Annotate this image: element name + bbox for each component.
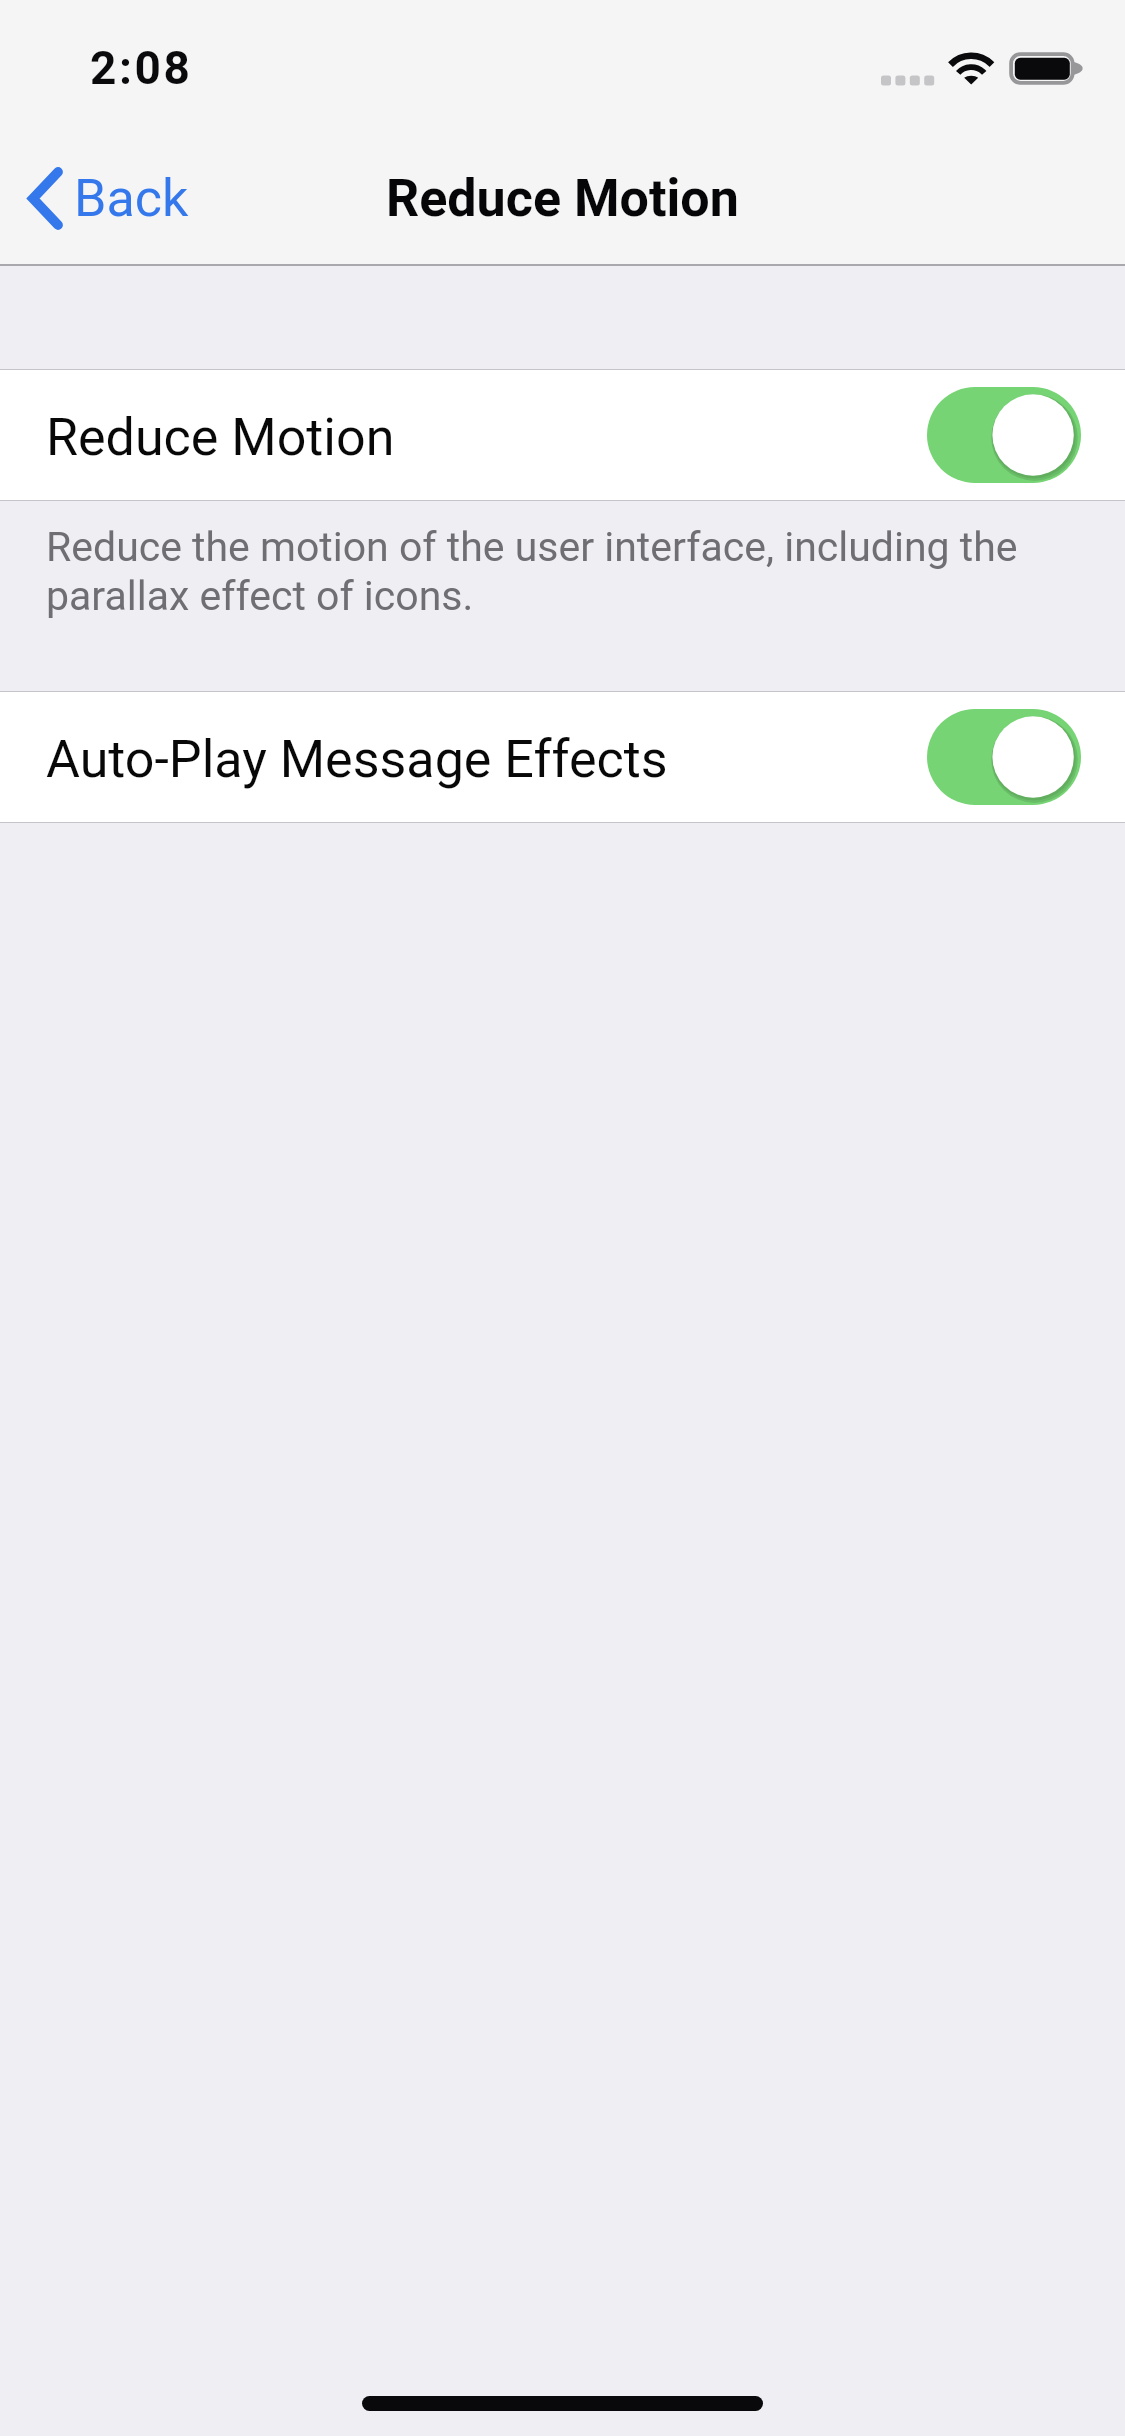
- staticText: Reduce Motion: [46, 407, 395, 468]
- button[interactable]: Auto-Play Message Effects: [0, 692, 1125, 822]
- button[interactable]: Toggle setting on or off: [927, 387, 1081, 483]
- button[interactable]: Back: [0, 151, 213, 246]
- staticText: Auto-Play Message Effects: [46, 729, 668, 790]
- staticText: Reduce Motion: [386, 168, 739, 229]
- staticText: Reduce the motion of the user interface,…: [46, 523, 1089, 620]
- button[interactable]: Reduce Motion: [0, 370, 1125, 500]
- staticText: 2:08: [90, 41, 193, 95]
- staticText: Back: [74, 168, 189, 229]
- button[interactable]: Toggle setting on or off: [927, 709, 1081, 805]
